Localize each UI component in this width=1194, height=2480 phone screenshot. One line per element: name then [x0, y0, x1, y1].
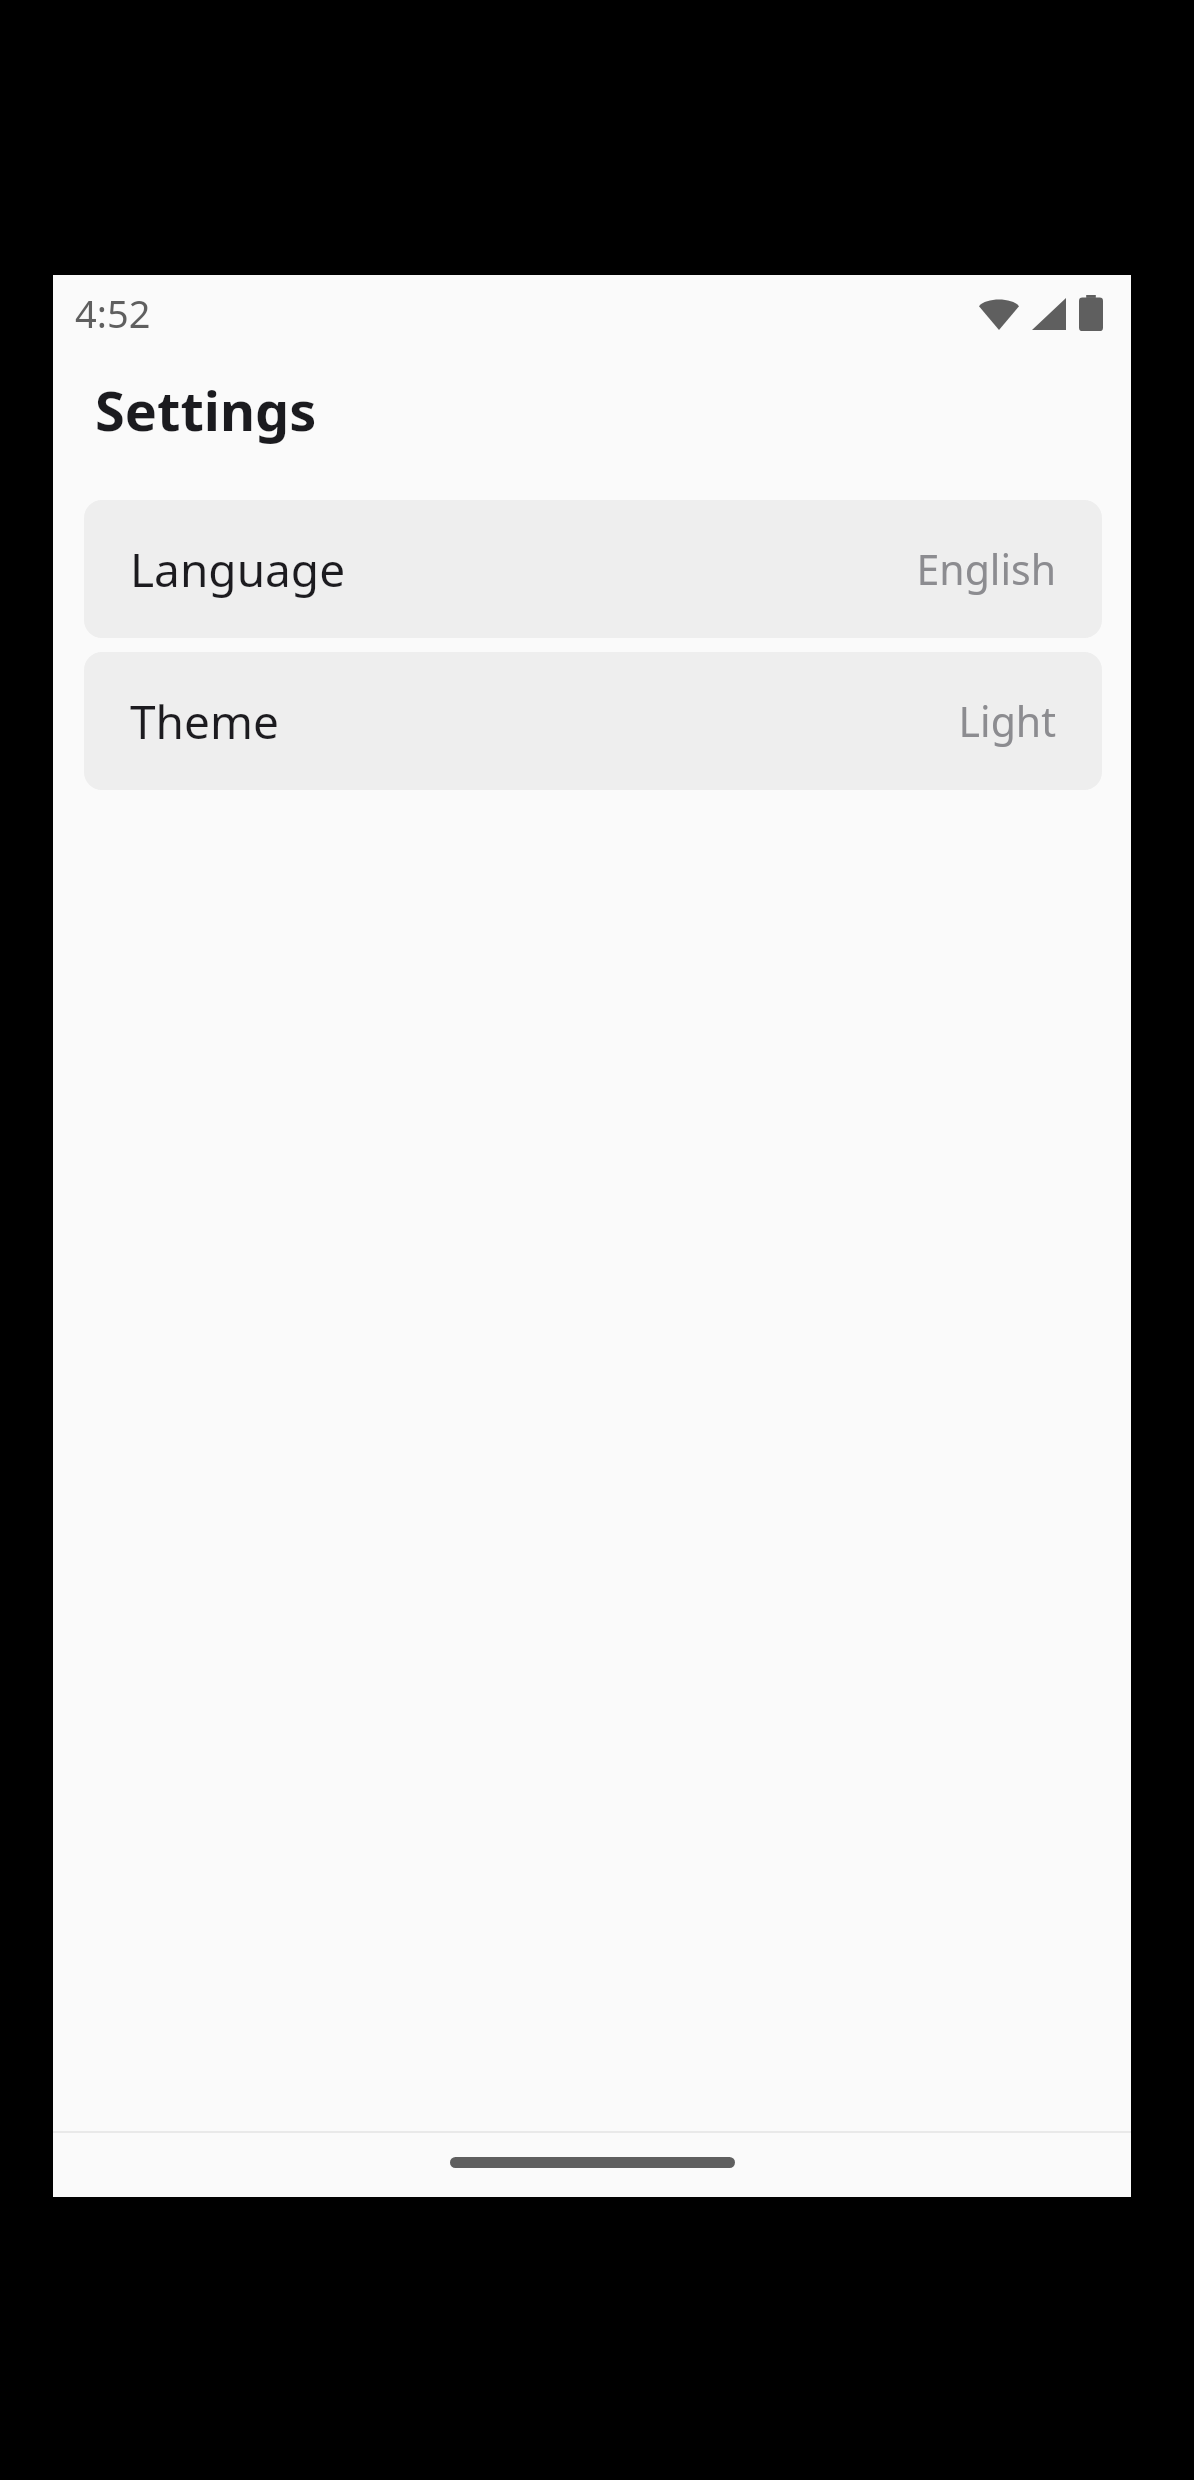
staticText: Theme	[130, 690, 279, 753]
staticText: Light	[958, 693, 1056, 749]
button[interactable]: Language	[84, 500, 1102, 638]
staticText: 4:52	[75, 287, 151, 339]
button[interactable]: Theme	[84, 652, 1102, 790]
staticText: Settings	[95, 373, 317, 447]
staticText: Language	[130, 538, 346, 601]
staticText: English	[916, 541, 1056, 597]
